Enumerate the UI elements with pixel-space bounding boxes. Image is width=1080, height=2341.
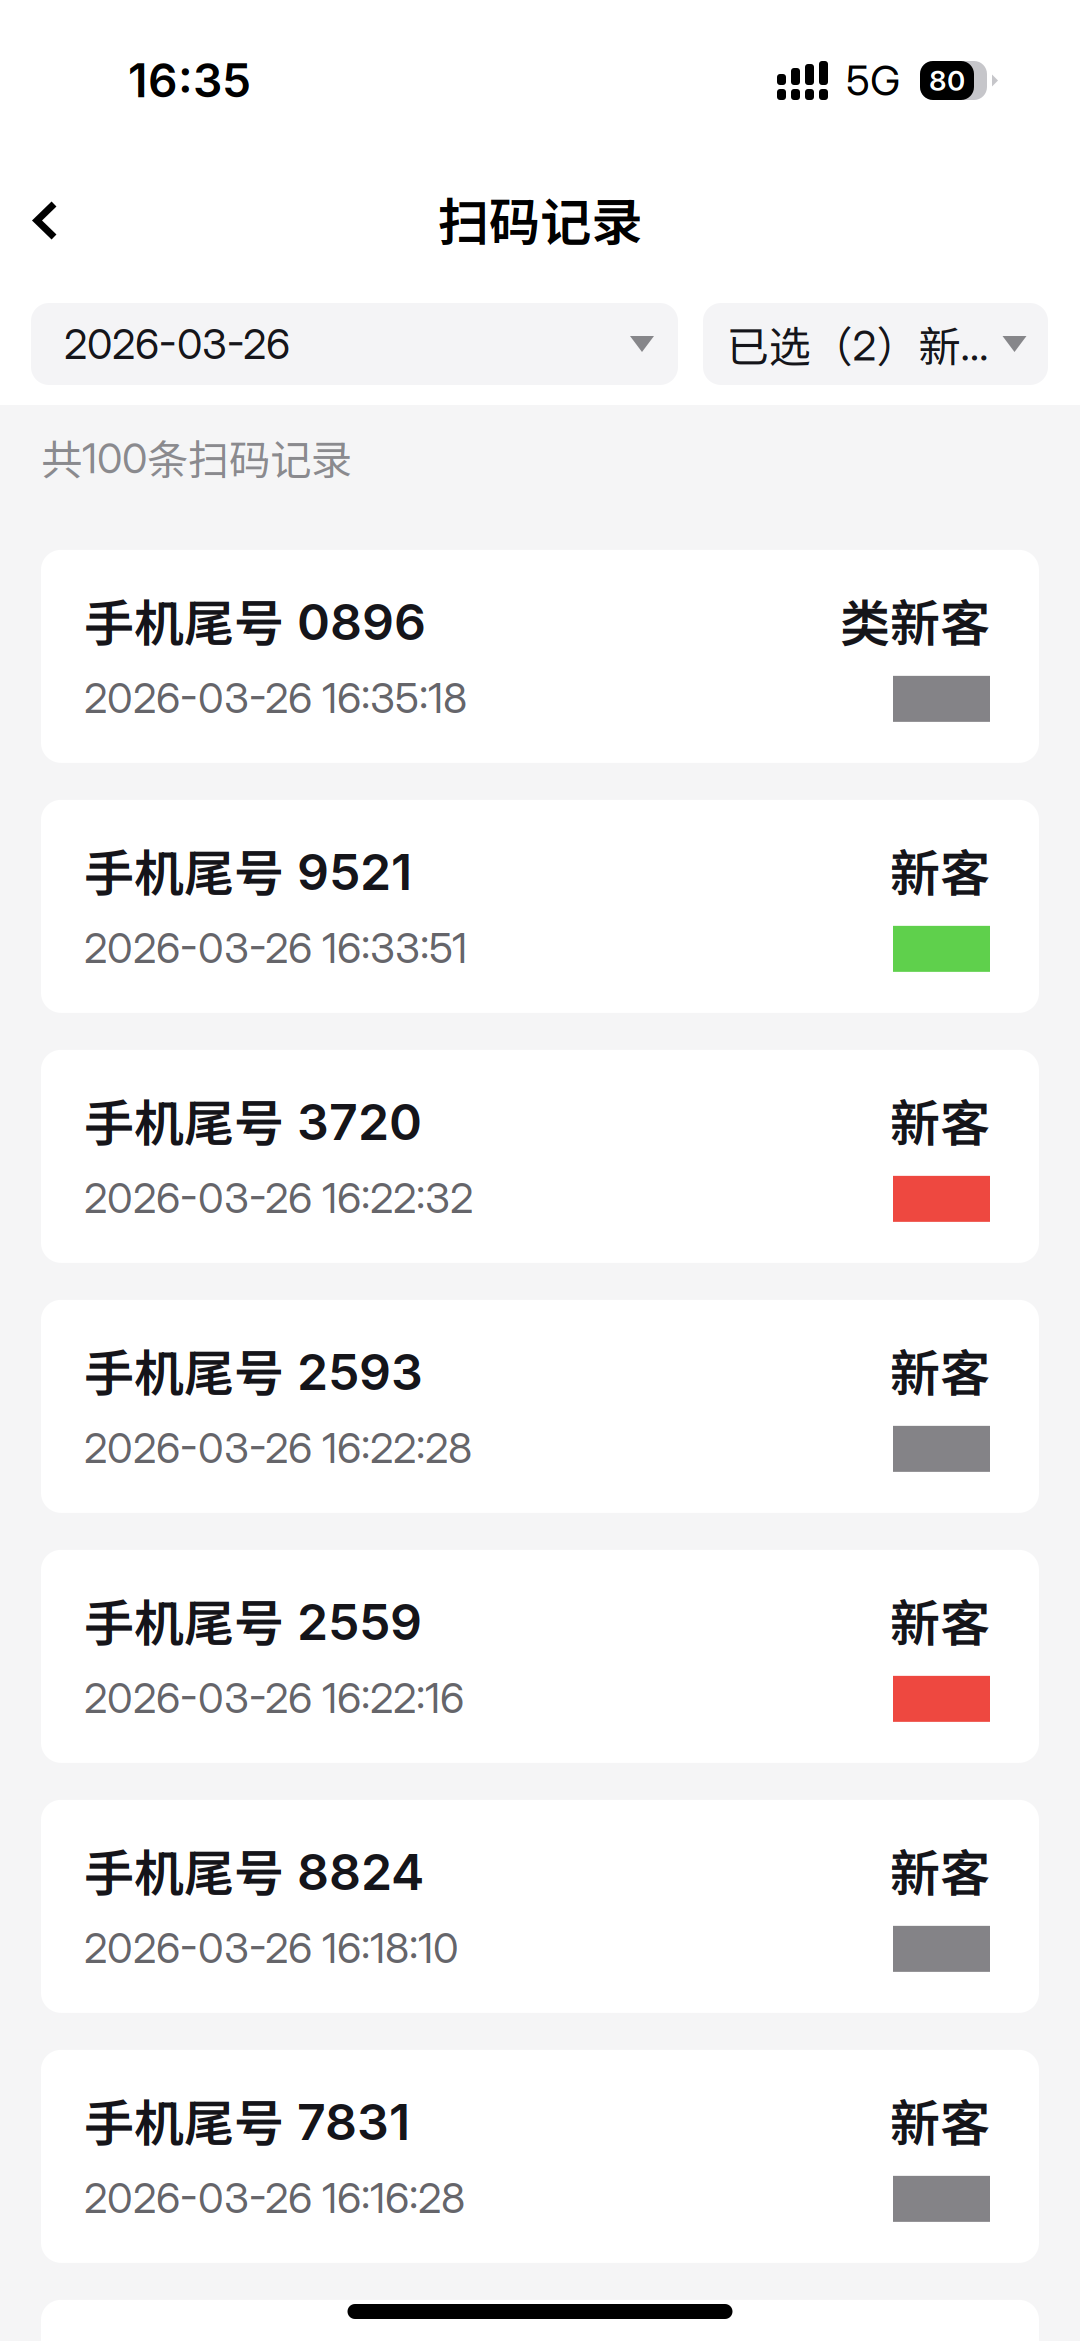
- staticText: 扫码记录: [438, 181, 642, 256]
- staticText: 手机尾号 7831: [84, 2084, 410, 2156]
- staticText: 手机尾号 0896: [84, 584, 426, 656]
- staticText: 共100条扫码记录: [41, 427, 352, 487]
- staticText: 2026-03-26 16:16:28: [84, 2173, 465, 2223]
- button[interactable]: 手机尾号 9521: [41, 800, 1039, 1013]
- staticText: 手机尾号 3720: [84, 1084, 422, 1156]
- staticText: 新客: [890, 2084, 990, 2156]
- staticText: 新客: [890, 1834, 990, 1906]
- staticText: 新客: [890, 834, 990, 906]
- staticText: 16:35: [128, 53, 251, 108]
- staticText: 2026-03-26 16:22:28: [84, 1423, 472, 1473]
- staticText: 5G: [846, 55, 900, 105]
- button[interactable]: 手机尾号 8824: [41, 1800, 1039, 2013]
- staticText: 2026-03-26 16:33:51: [84, 923, 467, 973]
- staticText: 2026-03-26 16:22:32: [84, 1173, 473, 1223]
- button[interactable]: 手机尾号 0896: [41, 550, 1039, 763]
- button[interactable]: Back: [0, 179, 84, 261]
- staticText: 类新客: [840, 584, 990, 656]
- staticText: 新客: [890, 1584, 990, 1656]
- button[interactable]: 手机尾号 2593: [41, 1300, 1039, 1513]
- staticText: 新客: [890, 1334, 990, 1406]
- button[interactable]: 手机尾号 7831: [41, 2050, 1039, 2263]
- staticText: 2026-03-26 16:18:10: [84, 1923, 459, 1973]
- button[interactable]: 手机尾号 3720: [41, 1050, 1039, 1263]
- staticText: 2026-03-26 16:22:16: [84, 1673, 464, 1723]
- staticText: 已选（2）新…: [726, 313, 988, 374]
- button[interactable]: 2026-03-26: [31, 303, 678, 385]
- staticText: 新客: [890, 1084, 990, 1156]
- button[interactable]: 手机尾号 5566: [41, 2300, 1039, 2341]
- staticText: 2026-03-26: [64, 319, 290, 369]
- staticText: 手机尾号 9521: [84, 834, 412, 906]
- staticText: 手机尾号 2593: [84, 1334, 423, 1406]
- staticText: 80: [929, 64, 965, 97]
- staticText: 2026-03-26 16:35:18: [84, 673, 467, 723]
- button[interactable]: 手机尾号 2559: [41, 1550, 1039, 1763]
- button[interactable]: 已选（2）新…: [703, 303, 1048, 385]
- staticText: 手机尾号 2559: [84, 1584, 422, 1656]
- staticText: 手机尾号 8824: [84, 1834, 424, 1906]
